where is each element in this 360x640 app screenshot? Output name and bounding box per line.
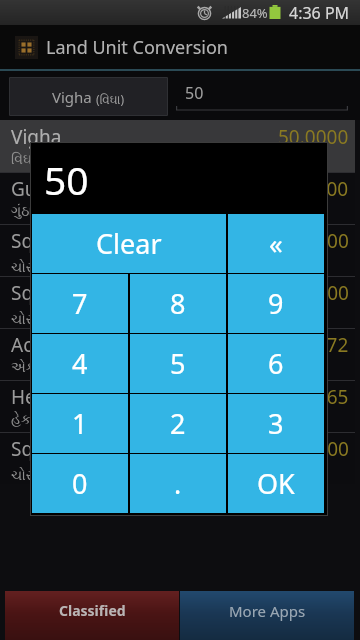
staticText: Hectare [11,384,81,410]
staticText: OK [257,465,295,502]
staticText: 3 [268,405,284,442]
staticText: 50.0000 [278,124,349,150]
staticText: 1 [72,405,88,442]
staticText: હેક્ટર [11,413,46,427]
staticText: Square Meter [11,280,133,306]
staticText: Square Yard [11,436,119,462]
staticText: Land Unit Conversion [46,35,228,60]
staticText: 84% [242,4,268,22]
button[interactable]: Square Meter [0,276,355,328]
button[interactable]: 0 [32,454,128,513]
button[interactable]: 4 [32,334,128,393]
button[interactable]: Vigha [0,120,355,172]
staticText: વિઘા [11,153,36,167]
button[interactable]: Vigha [9,77,168,116]
button[interactable]: 6 [228,334,324,393]
button[interactable]: . [130,454,226,513]
button[interactable]: OK [228,454,324,513]
button[interactable]: 1 [32,394,128,453]
button[interactable]: 7 [32,274,128,333]
staticText: ચોરસ ફૂટ [11,257,67,276]
staticText: (વિઘા) [96,91,125,107]
staticText: 4:36 PM [289,2,350,24]
button[interactable]: Square Yard [0,432,355,484]
staticText: 50 [44,153,89,206]
staticText: 2 [170,405,186,442]
staticText: 80937.0000 [246,280,349,306]
staticText: 5 [170,345,186,382]
staticText: ચોરસ યાર્ડ [11,465,71,484]
staticText: « [269,225,283,262]
staticText: Vigha [11,124,62,150]
button[interactable]: 3 [228,394,324,453]
staticText: 50 [185,82,204,104]
staticText: 7 [72,285,88,322]
button[interactable]: Hectare [0,380,355,432]
button[interactable]: 8 [130,274,226,333]
staticText: 8.0965 [289,384,349,410]
staticText: Classified [59,601,126,620]
staticText: એકડ [11,361,44,375]
button[interactable]: Guntha [0,172,355,224]
button[interactable]: 9 [228,274,324,333]
button[interactable]: « [228,214,324,273]
staticText: . [174,465,182,502]
staticText: 871200.0000 [235,228,349,254]
staticText: 0 [72,465,88,502]
staticText: 20.0072 [278,332,349,358]
staticText: 4 [72,345,88,382]
staticText: ગુંઠા [11,205,33,219]
button[interactable]: Acre [0,328,355,380]
staticText: 6 [268,345,284,382]
button[interactable]: Classified [5,591,179,640]
staticText: 8 [170,285,186,322]
button[interactable]: Square Feet [0,224,355,276]
button[interactable]: 50 [176,77,348,116]
staticText: Acre [11,332,51,358]
staticText: ચોરસ મીટર [11,309,78,328]
staticText: Square Feet [11,228,117,254]
button[interactable]: 2 [130,394,226,453]
staticText: Clear [96,225,162,262]
button[interactable]: Clear [32,214,226,273]
button[interactable]: 5 [130,334,226,393]
staticText: 800.0000 [267,176,349,202]
button[interactable]: More Apps [180,591,354,640]
staticText: 9 [268,285,284,322]
staticText: More Apps [229,601,306,621]
staticText: Vigha [52,87,96,107]
staticText: 96800.0000 [246,436,349,462]
staticText: Guntha [11,176,78,202]
